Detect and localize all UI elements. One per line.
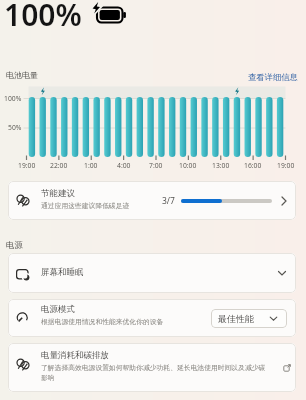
staticText: 13:00	[212, 161, 230, 170]
staticText: 了解选择高效电源设置如何帮助你减少功耗、延长电池使用时间以及减少碳 影响	[41, 363, 287, 382]
staticText: 查看详细信息	[248, 72, 298, 82]
staticText: 16:00	[244, 161, 262, 170]
staticText: 电源	[6, 240, 23, 251]
button[interactable]: 最佳性能	[211, 309, 287, 328]
staticText: 50%	[8, 123, 22, 132]
button[interactable]: 节能建议	[8, 181, 296, 220]
button[interactable]: 电源模式	[8, 299, 296, 337]
staticText: 100%	[4, 0, 82, 35]
staticText: 7:00	[149, 161, 163, 170]
button[interactable]: 屏幕和睡眠	[8, 253, 296, 293]
staticText: 22:00	[50, 161, 68, 170]
staticText: 电池电量	[6, 70, 38, 80]
staticText: 19:00	[277, 161, 295, 170]
staticText: 通过应用这些建议降低碳足迹	[41, 201, 130, 210]
staticText: 屏幕和睡眠	[41, 267, 84, 278]
staticText: 电源模式	[41, 304, 75, 315]
staticText: 电量消耗和碳排放	[41, 350, 109, 361]
staticText: 节能建议	[41, 188, 75, 199]
staticText: 19:00	[18, 161, 36, 170]
button[interactable]: 查看详细信息	[244, 70, 298, 83]
staticText: 10:00	[179, 161, 197, 170]
button[interactable]: 电量消耗和碳排放	[8, 343, 296, 392]
staticText: 4:00	[117, 161, 131, 170]
staticText: 最佳性能	[218, 313, 254, 324]
staticText: 3/7	[162, 195, 175, 207]
staticText: 1:00	[84, 161, 98, 170]
staticText: 100%	[4, 94, 22, 103]
staticText: 根据电源使用情况和性能来优化你的设备	[41, 317, 164, 326]
